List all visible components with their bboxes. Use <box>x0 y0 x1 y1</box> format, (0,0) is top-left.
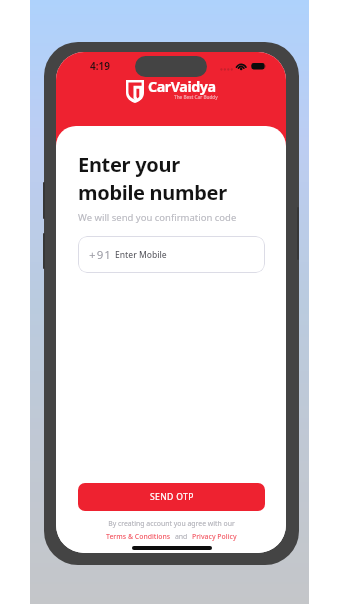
staticText: 4:19 <box>90 59 110 73</box>
staticText: The Best Car Buddy <box>174 94 218 100</box>
staticText: and <box>175 532 188 541</box>
other: Status <box>220 60 266 72</box>
button[interactable]: Terms & Conditions <box>106 532 171 541</box>
staticText: Enter your mobile number <box>78 151 227 206</box>
staticText: CarVaidya <box>148 77 216 96</box>
staticText: Enter Mobile <box>115 249 167 261</box>
staticText: By creating account you agree with our <box>108 519 235 528</box>
staticText: We will send you confirmation code <box>78 211 237 224</box>
staticText: SEND OTP <box>150 491 194 503</box>
button[interactable]: +91 <box>78 236 265 273</box>
button[interactable]: SEND OTP <box>78 483 265 511</box>
staticText: +91 <box>89 247 113 263</box>
button[interactable]: Privacy Policy <box>192 532 237 541</box>
